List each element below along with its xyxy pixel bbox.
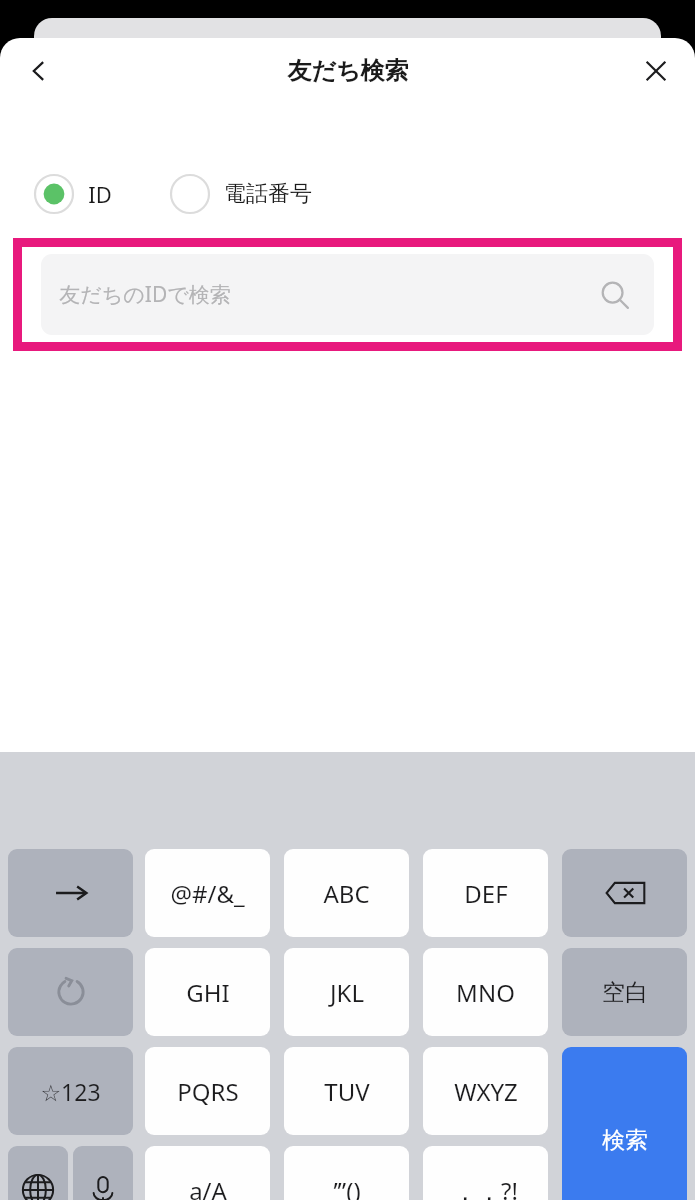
- staticText: 友だちのIDで検索: [59, 280, 231, 309]
- staticText: ．，?!: [453, 1174, 518, 1200]
- button[interactable]: 空白: [562, 948, 687, 1036]
- button[interactable]: JKL: [284, 948, 409, 1036]
- staticText: 検索: [602, 1126, 648, 1155]
- button[interactable]: Backspace: [562, 849, 687, 937]
- staticText: TUV: [324, 1075, 370, 1108]
- staticText: 友だち検索: [287, 56, 409, 86]
- staticText: ’”(): [333, 1174, 361, 1200]
- button[interactable]: GHI: [145, 948, 270, 1036]
- staticText: GHI: [186, 976, 230, 1009]
- button[interactable]: MNO: [423, 948, 548, 1036]
- staticText: 空白: [602, 978, 648, 1007]
- staticText: DEF: [464, 877, 508, 910]
- button[interactable]: WXYZ: [423, 1047, 548, 1135]
- button[interactable]: Language: [8, 1146, 68, 1200]
- button[interactable]: a/A: [145, 1146, 270, 1200]
- button[interactable]: [8, 948, 133, 1036]
- staticText: @#/&_: [170, 877, 245, 910]
- button[interactable]: ID: [34, 170, 112, 218]
- button[interactable]: Voice input: [73, 1146, 133, 1200]
- button[interactable]: 友だちのIDで検索: [41, 254, 654, 335]
- button[interactable]: TUV: [284, 1047, 409, 1135]
- button[interactable]: Close: [627, 42, 685, 100]
- staticText: PQRS: [177, 1075, 239, 1108]
- staticText: ☆123: [40, 1076, 101, 1107]
- staticText: ABC: [323, 877, 370, 910]
- button[interactable]: ☆123: [8, 1047, 133, 1135]
- staticText: WXYZ: [454, 1075, 518, 1108]
- button[interactable]: [8, 849, 133, 937]
- button[interactable]: 電話番号: [170, 170, 312, 218]
- button[interactable]: ’”(): [284, 1146, 409, 1200]
- staticText: a/A: [189, 1174, 227, 1200]
- button[interactable]: ABC: [284, 849, 409, 937]
- button[interactable]: @#/&_: [145, 849, 270, 937]
- staticText: ID: [88, 179, 112, 209]
- staticText: 電話番号: [224, 180, 312, 208]
- button[interactable]: ．，?!: [423, 1146, 548, 1200]
- button[interactable]: DEF: [423, 849, 548, 937]
- staticText: MNO: [456, 976, 515, 1009]
- button[interactable]: Back: [10, 42, 68, 100]
- button[interactable]: PQRS: [145, 1047, 270, 1135]
- staticText: JKL: [330, 976, 364, 1009]
- button[interactable]: 検索: [562, 1047, 687, 1200]
